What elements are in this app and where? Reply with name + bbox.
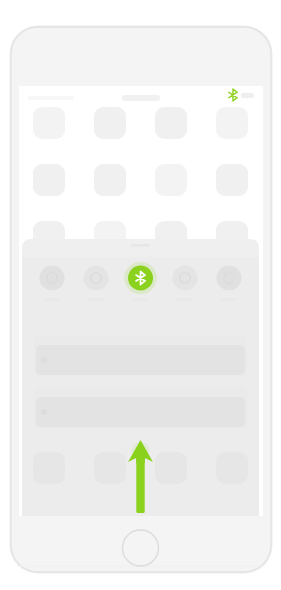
button[interactable]: Wi-Fi [84,266,109,291]
button[interactable]: Bluetooth on [128,266,153,291]
button[interactable]: Home [123,530,159,566]
button[interactable]: Airplane mode [40,266,65,291]
button[interactable]: Rotation lock [217,266,242,291]
button[interactable]: Do not disturb [173,266,198,291]
